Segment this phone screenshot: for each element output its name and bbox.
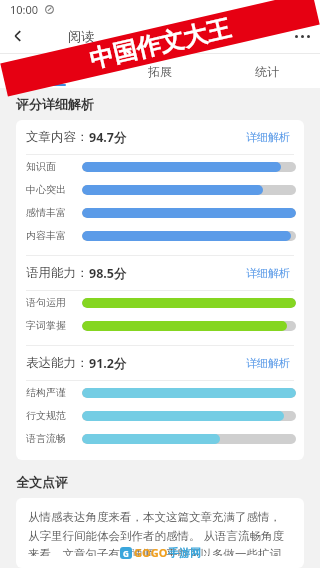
staticText: 中国作文大王 [86, 13, 234, 75]
staticText: 语用能力： [26, 265, 89, 281]
staticText: 详细解析 [246, 130, 290, 144]
button[interactable]: 评分 [0, 54, 106, 88]
staticText: 评分详细解析 [16, 96, 94, 112]
staticText: G [123, 548, 129, 559]
button[interactable]: 详细解析 [242, 352, 294, 374]
staticText: 表达能力： [26, 355, 89, 371]
staticText: 94.7分 [89, 129, 127, 146]
staticText: 中心突出 [26, 183, 66, 196]
staticText: 语言流畅 [26, 432, 66, 445]
staticText: 拓展 [148, 64, 172, 79]
staticText: 10:00 [10, 2, 39, 17]
staticText: 详细解析 [246, 266, 290, 280]
staticText: 阅读 [68, 28, 94, 44]
staticText: 统计 [255, 64, 279, 79]
button[interactable]: 拓展 [106, 54, 213, 88]
staticText: 文章内容： [26, 129, 89, 145]
staticText: 从情感表达角度来看，本文这篇文章充满了感情，从字里行间能体会到作者的感情。 从语… [28, 510, 292, 556]
staticText: 内容丰富 [26, 229, 66, 242]
staticText: 感情丰富 [26, 206, 66, 219]
button[interactable]: 详细解析 [242, 262, 294, 284]
staticText: 结构严谨 [26, 386, 66, 399]
staticText: 91.2分 [89, 355, 127, 372]
staticText: 98.5分 [89, 265, 127, 282]
staticText: GOGO [134, 545, 168, 560]
staticText: 详细解析 [246, 356, 290, 370]
button[interactable]: 详细解析 [242, 126, 294, 148]
staticText: 行文规范 [26, 409, 66, 422]
staticText: 字词掌握 [26, 319, 66, 332]
button[interactable]: 统计 [213, 54, 320, 88]
button[interactable]: More options [284, 18, 320, 54]
staticText: 语句运用 [26, 296, 66, 309]
staticText: 知识面 [26, 160, 56, 173]
staticText: 全文点评 [16, 474, 68, 490]
staticText: 手游网 [168, 546, 201, 560]
button[interactable]: Back [0, 18, 36, 54]
